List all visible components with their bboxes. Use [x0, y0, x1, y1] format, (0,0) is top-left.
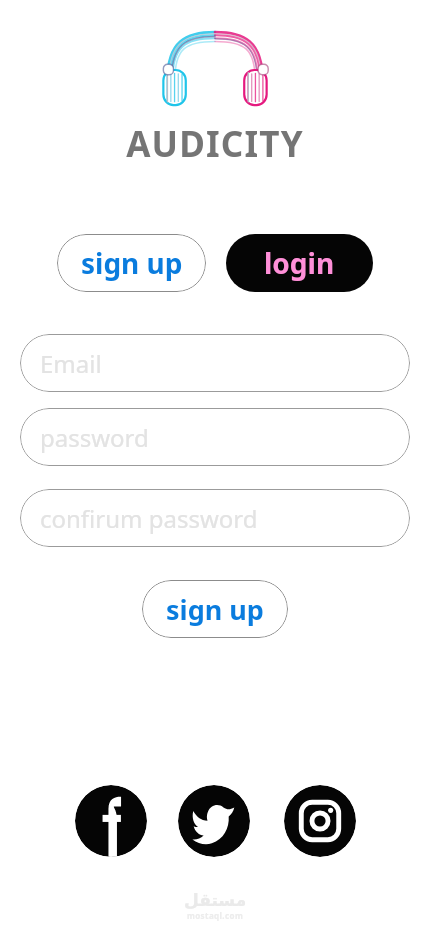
staticText: sign up: [166, 591, 264, 628]
staticText: mostaql.com: [187, 910, 244, 921]
staticText: مستقل: [184, 890, 247, 910]
button[interactable]: Email: [20, 334, 410, 392]
staticText: AUDICITY: [126, 120, 304, 168]
button[interactable]: sign up: [57, 234, 206, 292]
button[interactable]: confirum password: [20, 489, 410, 547]
button[interactable]: Twitter: [178, 785, 250, 857]
button[interactable]: password: [20, 408, 410, 466]
staticText: confirum password: [40, 502, 258, 535]
button[interactable]: Instagram: [284, 785, 356, 857]
staticText: password: [40, 421, 149, 454]
staticText: Email: [40, 347, 102, 380]
button[interactable]: sign up: [142, 580, 288, 638]
staticText: sign up: [81, 244, 183, 282]
staticText: login: [264, 244, 335, 282]
button[interactable]: login: [226, 234, 373, 292]
button[interactable]: Facebook: [75, 785, 147, 857]
